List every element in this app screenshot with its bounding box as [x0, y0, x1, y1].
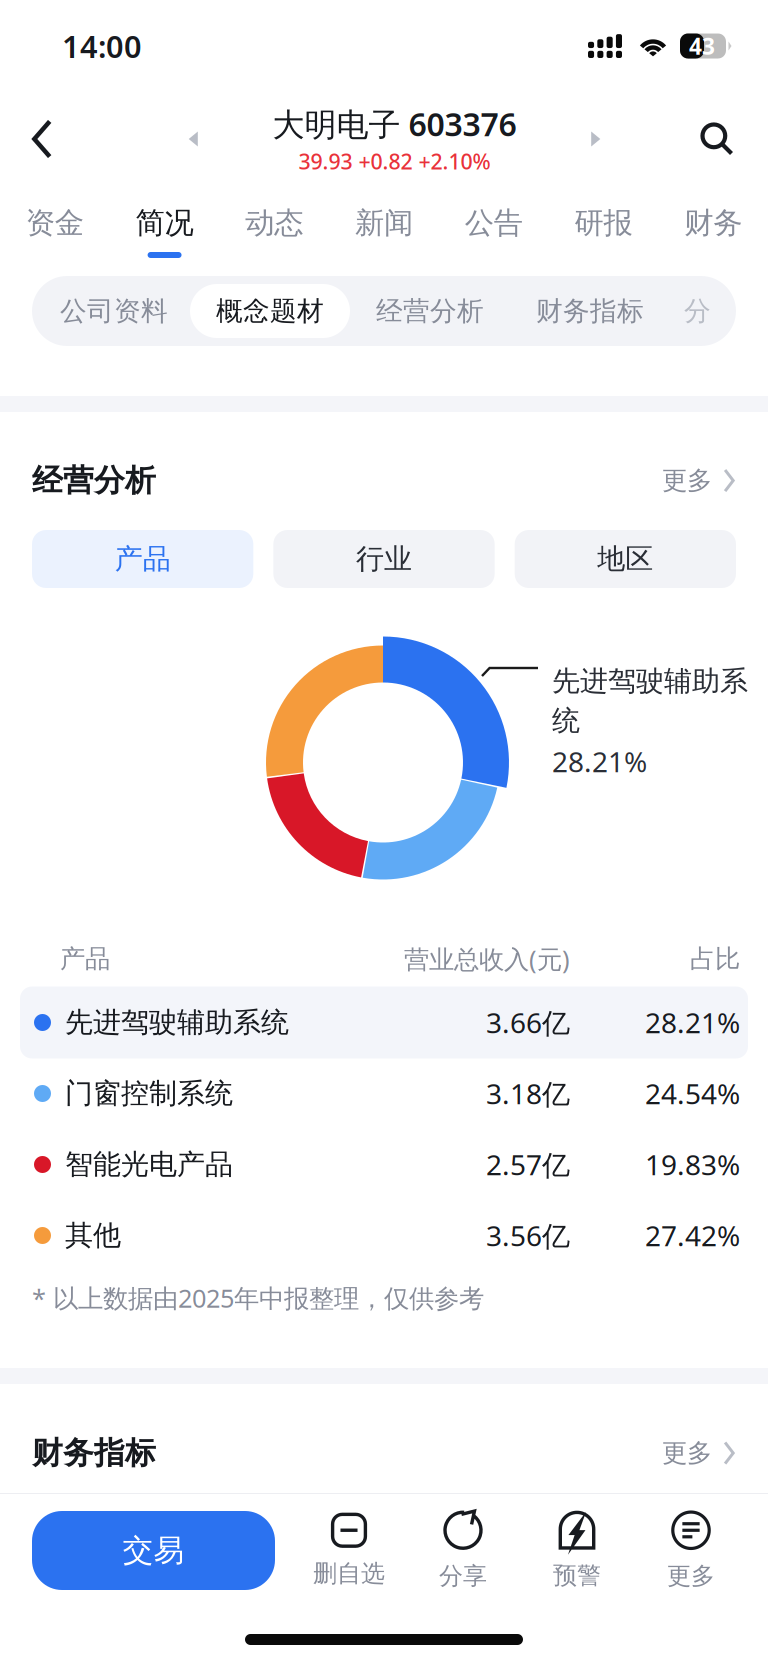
- button[interactable]: 产品: [32, 530, 253, 588]
- staticText: 智能光电产品: [65, 1147, 233, 1182]
- staticText: 交易: [122, 1532, 184, 1569]
- staticText: 28.21%: [645, 1004, 740, 1041]
- button[interactable]: 上一只: [131, 109, 221, 168]
- button[interactable]: 研报: [549, 186, 658, 268]
- staticText: 2.57亿: [486, 1146, 570, 1183]
- button[interactable]: 经营分析: [350, 284, 510, 338]
- staticText: 研报: [574, 205, 632, 241]
- staticText: 24.54%: [645, 1075, 740, 1112]
- staticText: 其他: [65, 1218, 121, 1253]
- staticText: 删自选: [313, 1559, 385, 1588]
- button[interactable]: 资金: [0, 186, 110, 268]
- button[interactable]: 预警: [520, 1511, 634, 1590]
- staticText: 更多: [667, 1561, 715, 1591]
- staticText: 财务指标: [536, 295, 644, 327]
- staticText: 门窗控制系统: [65, 1076, 233, 1111]
- button[interactable]: 公告: [439, 186, 549, 268]
- staticText: 14:00: [62, 26, 142, 66]
- staticText: 先进驾驶辅助系: [552, 664, 748, 698]
- button[interactable]: 删自选: [292, 1513, 406, 1588]
- staticText: 资金: [26, 205, 84, 241]
- staticText: 公告: [465, 205, 523, 241]
- staticText: 39.93 +0.82 +2.10%: [298, 147, 490, 175]
- button[interactable]: 行业: [273, 530, 495, 588]
- button[interactable]: 返回: [0, 99, 80, 179]
- staticText: 动态: [245, 205, 303, 241]
- staticText: 地区: [597, 542, 653, 576]
- button[interactable]: 搜索: [675, 101, 768, 177]
- button[interactable]: 财务: [658, 186, 768, 268]
- staticText: 分: [684, 295, 711, 327]
- button[interactable]: 简况: [110, 186, 219, 268]
- staticText: 27.42%: [645, 1217, 740, 1254]
- staticText: 产品: [115, 542, 171, 576]
- staticText: 新闻: [355, 205, 413, 241]
- staticText: 分享: [439, 1561, 487, 1591]
- staticText: 财务: [684, 205, 742, 241]
- button[interactable]: 下一只: [568, 109, 624, 168]
- button[interactable]: 公司资料: [38, 284, 190, 338]
- staticText: 经营分析: [32, 462, 156, 499]
- staticText: 营业总收入(元): [404, 942, 570, 976]
- staticText: 3.66亿: [486, 1004, 570, 1041]
- button[interactable]: 财务指标: [510, 284, 670, 338]
- staticText: 更多: [662, 465, 712, 496]
- staticText: 先进驾驶辅助系统: [65, 1005, 289, 1040]
- staticText: 统: [552, 703, 580, 738]
- button[interactable]: 更多: [634, 1510, 748, 1591]
- staticText: 大明电子 603376: [272, 103, 516, 145]
- staticText: 产品: [60, 943, 110, 974]
- button[interactable]: 更多: [648, 451, 736, 510]
- staticText: 行业: [356, 542, 412, 576]
- staticText: 经营分析: [376, 295, 484, 327]
- button[interactable]: 交易: [32, 1511, 275, 1590]
- staticText: 43: [689, 31, 715, 61]
- staticText: 财务指标: [32, 1434, 156, 1472]
- staticText: * 以上数据由2025年中报整理，仅供参考: [32, 1281, 484, 1315]
- button[interactable]: 分享: [406, 1510, 520, 1591]
- staticText: 更多: [662, 1437, 712, 1469]
- staticText: 28.21%: [552, 743, 647, 780]
- button[interactable]: 概念题材: [190, 284, 350, 338]
- button[interactable]: 动态: [219, 186, 329, 268]
- staticText: 3.56亿: [486, 1217, 570, 1254]
- staticText: 19.83%: [645, 1146, 740, 1183]
- staticText: 公司资料: [60, 295, 168, 327]
- staticText: 占比: [690, 943, 740, 974]
- staticText: 简况: [136, 205, 194, 241]
- staticText: 预警: [553, 1561, 601, 1590]
- button[interactable]: 新闻: [329, 186, 439, 268]
- staticText: 概念题材: [216, 295, 324, 327]
- button[interactable]: 更多: [648, 1423, 736, 1483]
- button[interactable]: 地区: [515, 530, 736, 588]
- staticText: 3.18亿: [486, 1075, 570, 1112]
